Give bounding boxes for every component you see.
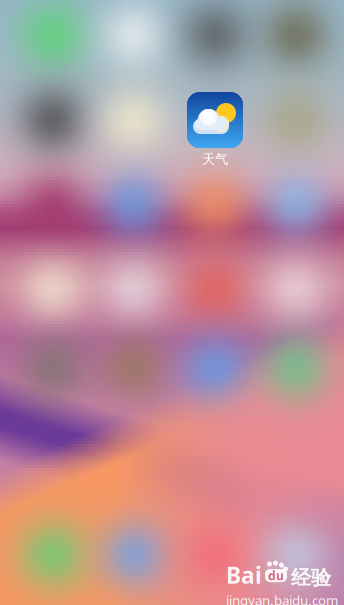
staticText: Bai xyxy=(226,560,262,590)
staticText: 经验 xyxy=(291,565,331,590)
staticText: jingyan.baidu.com xyxy=(226,591,338,605)
button[interactable]: 天气 xyxy=(187,92,243,167)
staticText: 天气 xyxy=(202,151,228,167)
staticText: du xyxy=(268,568,284,583)
